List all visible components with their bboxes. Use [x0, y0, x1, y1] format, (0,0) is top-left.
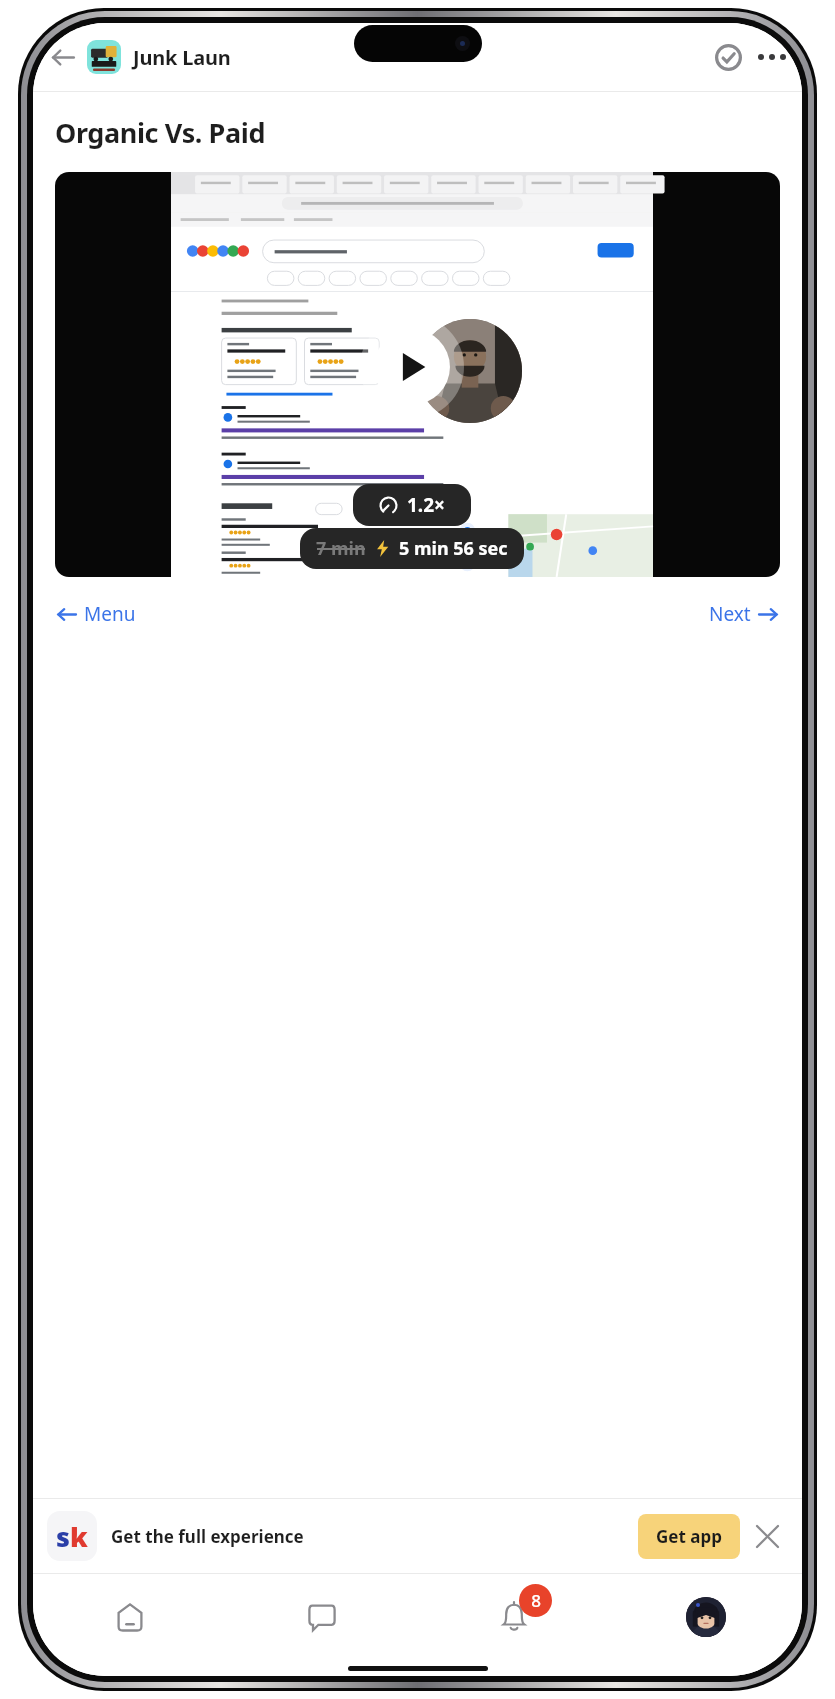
staticText: Get the full experience [111, 1525, 304, 1548]
button[interactable]: More options [750, 35, 794, 79]
staticText: 7 min [316, 536, 366, 561]
button[interactable]: Menu [51, 593, 142, 635]
button[interactable]: Home [33, 1574, 226, 1660]
staticText: k [70, 1518, 88, 1555]
staticText: Get app [656, 1525, 722, 1548]
staticText: Junk Laun [133, 44, 231, 71]
button[interactable]: Mark complete [706, 35, 750, 79]
button[interactable]: Profile [610, 1574, 802, 1660]
staticText: 8 [531, 1589, 541, 1612]
staticText: 1.2× [407, 492, 445, 518]
button[interactable]: Play video [55, 172, 780, 577]
staticText: Next [709, 601, 751, 627]
staticText: Organic Vs. Paid [55, 114, 266, 151]
staticText: Menu [84, 601, 136, 627]
button[interactable]: Messages [226, 1574, 418, 1660]
button[interactable]: Close [746, 1515, 788, 1557]
staticText: s [56, 1518, 70, 1555]
button[interactable] [87, 40, 121, 74]
button[interactable]: Notifications [418, 1574, 610, 1660]
button[interactable]: Back [41, 35, 85, 79]
staticText: 5 min 56 sec [399, 536, 508, 561]
button[interactable]: Get app [638, 1514, 740, 1559]
button[interactable]: Next [703, 593, 784, 635]
